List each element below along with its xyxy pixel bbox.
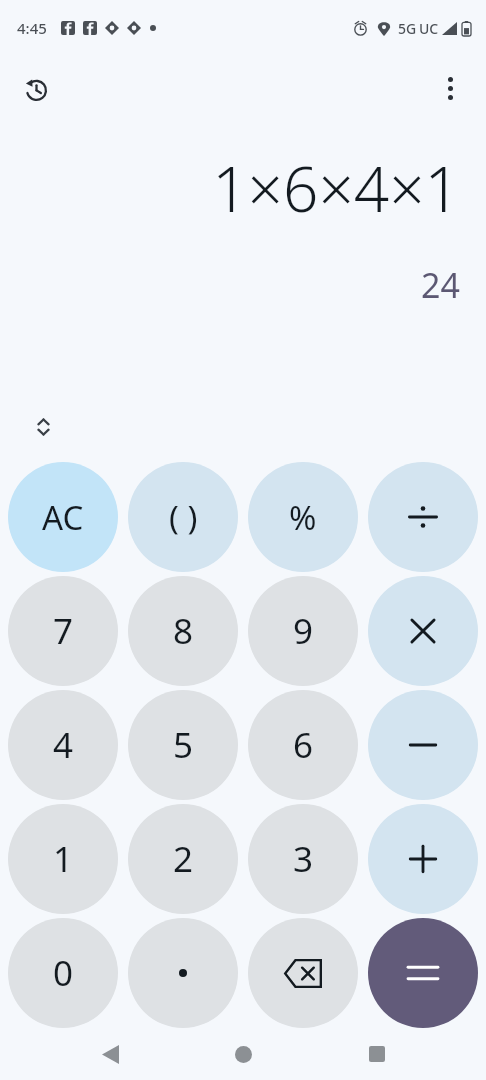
button[interactable]: Expand history bbox=[20, 404, 66, 450]
button[interactable]: 9 bbox=[248, 576, 358, 686]
button[interactable]: 8 bbox=[128, 576, 238, 686]
button[interactable]: 4 bbox=[8, 690, 118, 800]
button[interactable]: % bbox=[248, 462, 358, 572]
button[interactable]: More options bbox=[426, 64, 474, 112]
button[interactable]: Backspace bbox=[248, 918, 358, 1028]
button[interactable]: Multiply bbox=[368, 576, 478, 686]
button[interactable]: 3 bbox=[248, 804, 358, 914]
button[interactable]: ( ) bbox=[128, 462, 238, 572]
button[interactable]: 2 bbox=[128, 804, 238, 914]
button[interactable]: Home bbox=[219, 1030, 267, 1078]
staticText: 0 bbox=[53, 949, 74, 997]
staticText: 1 bbox=[53, 835, 74, 883]
staticText: % bbox=[289, 495, 317, 540]
staticText: AC bbox=[42, 495, 84, 540]
button[interactable]: Back bbox=[86, 1030, 134, 1078]
staticText: 2 bbox=[173, 835, 194, 883]
staticText: 1×6×4×1 bbox=[212, 146, 460, 230]
staticText: 9 bbox=[293, 607, 314, 655]
button[interactable]: Decimal point bbox=[128, 918, 238, 1028]
button[interactable]: 5 bbox=[128, 690, 238, 800]
button[interactable]: Divide bbox=[368, 462, 478, 572]
button[interactable]: Equals bbox=[368, 918, 478, 1028]
staticText: ( ) bbox=[169, 495, 198, 540]
staticText: UC bbox=[419, 19, 439, 38]
staticText: 3 bbox=[293, 835, 314, 883]
staticText: 7 bbox=[53, 607, 74, 655]
staticText: 5G bbox=[398, 19, 417, 38]
staticText: 4:45 bbox=[17, 18, 47, 38]
button[interactable]: AC bbox=[8, 462, 118, 572]
button[interactable]: Recent apps bbox=[353, 1030, 401, 1078]
staticText: 6 bbox=[293, 721, 314, 769]
button[interactable]: 6 bbox=[248, 690, 358, 800]
button[interactable]: History bbox=[12, 64, 60, 112]
staticText: 5 bbox=[173, 721, 194, 769]
staticText: 8 bbox=[173, 607, 194, 655]
button[interactable]: 1 bbox=[8, 804, 118, 914]
staticText: 4 bbox=[53, 721, 74, 769]
button[interactable]: 0 bbox=[8, 918, 118, 1028]
button[interactable]: Plus bbox=[368, 804, 478, 914]
button[interactable]: 7 bbox=[8, 576, 118, 686]
staticText: 24 bbox=[421, 262, 460, 308]
button[interactable]: Minus bbox=[368, 690, 478, 800]
